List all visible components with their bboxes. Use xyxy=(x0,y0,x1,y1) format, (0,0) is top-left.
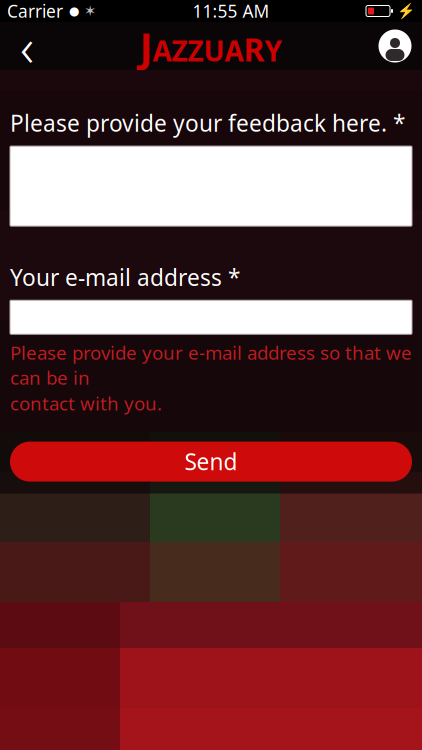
button[interactable]: Feedback text field xyxy=(0,146,422,226)
staticText: R xyxy=(243,28,264,70)
staticText: AZZUA xyxy=(152,32,243,69)
button[interactable]: Account xyxy=(368,22,422,70)
staticText: Send xyxy=(184,446,237,477)
staticText: Please provide your e-mail address so th… xyxy=(10,340,412,390)
button[interactable]: E-mail address field xyxy=(0,300,422,334)
staticText: ✶ xyxy=(84,3,96,19)
staticText: Y xyxy=(264,32,282,69)
staticText: Your e-mail address * xyxy=(10,262,240,292)
button[interactable]: Send xyxy=(0,442,422,482)
button[interactable]: Back xyxy=(0,22,54,70)
staticText: 11:55 AM xyxy=(192,0,269,22)
staticText: ‹ xyxy=(20,11,34,81)
staticText: ● xyxy=(69,4,79,18)
staticText: contact with you. xyxy=(10,391,162,416)
staticText: Please provide your feedback here. * xyxy=(10,108,405,138)
staticText: ⚡ xyxy=(397,3,415,19)
staticText: Carrier xyxy=(7,0,63,22)
staticText: J xyxy=(139,19,152,72)
